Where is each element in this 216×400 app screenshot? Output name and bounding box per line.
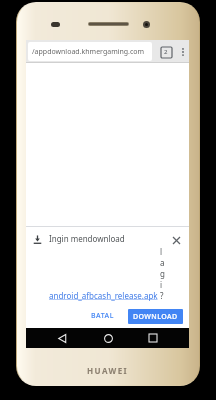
button[interactable]: Close [169,233,183,247]
button[interactable]: More options [177,44,189,60]
staticText: lagi? [160,246,165,301]
staticText: android_afbcash_release.apk [49,290,158,301]
button[interactable]: android_afbcash_release.apk [49,290,158,301]
staticText: DOWNLOAD [133,312,178,322]
staticText: /appdownload.khmergaming.com [32,47,145,57]
staticText: HUAWEI [87,365,129,376]
button[interactable]: Back [52,328,72,348]
button[interactable]: BATAL [84,308,121,324]
button[interactable]: Tabs, 2 open [158,44,174,60]
staticText: Ingin mendownload [49,233,125,244]
button[interactable]: Home [98,328,118,348]
staticText: 2 [164,48,168,56]
button[interactable]: /appdownload.khmergaming.com [28,42,152,61]
staticText: BATAL [91,311,114,321]
button[interactable]: Recent apps [143,328,163,348]
button[interactable]: DOWNLOAD [128,309,183,324]
